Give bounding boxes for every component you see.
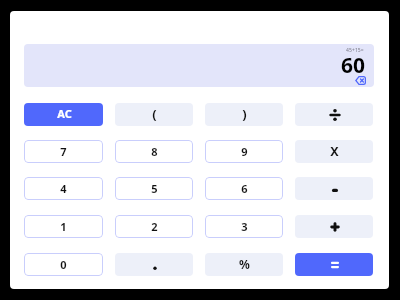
button[interactable]: 7 — [24, 140, 103, 163]
button[interactable]: X — [295, 140, 373, 163]
staticText: 1 — [60, 219, 67, 234]
staticText: 6 — [241, 181, 248, 196]
button[interactable]: Decimal point — [115, 253, 193, 276]
staticText: X — [330, 143, 339, 160]
button[interactable]: 6 — [205, 177, 283, 200]
staticText: % — [239, 256, 250, 272]
staticText: 0 — [60, 257, 67, 272]
button[interactable]: ) — [205, 103, 283, 126]
staticText: 45+15= — [346, 47, 364, 54]
button[interactable]: Minus — [295, 177, 373, 200]
staticText: 7 — [60, 144, 67, 159]
button[interactable]: Plus — [295, 215, 373, 238]
button[interactable]: 0 — [24, 253, 103, 276]
button[interactable]: Backspace — [355, 76, 366, 85]
button[interactable]: 3 — [205, 215, 283, 238]
button[interactable]: 2 — [115, 215, 193, 238]
button[interactable]: 4 — [24, 177, 103, 200]
staticText: 5 — [151, 181, 158, 196]
button[interactable]: 45+15= — [24, 44, 374, 87]
staticText: 2 — [151, 219, 158, 234]
button[interactable]: Equals — [295, 253, 373, 276]
staticText: 60 — [341, 51, 366, 80]
button[interactable]: 8 — [115, 140, 193, 163]
staticText: 3 — [241, 219, 248, 234]
staticText: 8 — [151, 144, 158, 159]
button[interactable]: Divide — [295, 103, 373, 126]
staticText: 9 — [241, 144, 248, 159]
staticText: ( — [152, 105, 157, 123]
button[interactable]: % — [205, 253, 283, 276]
button[interactable]: ( — [115, 103, 193, 126]
button[interactable]: 5 — [115, 177, 193, 200]
button[interactable]: 9 — [205, 140, 283, 163]
button[interactable]: AC — [24, 103, 103, 126]
staticText: ) — [242, 105, 247, 123]
button[interactable]: 1 — [24, 215, 103, 238]
staticText: AC — [57, 106, 72, 121]
staticText: 4 — [60, 181, 67, 196]
